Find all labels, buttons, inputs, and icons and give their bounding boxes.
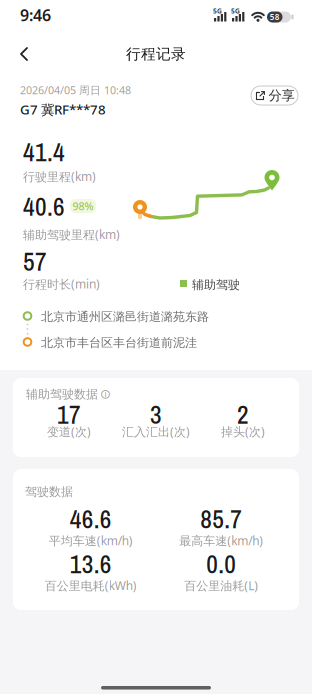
staticText: 58 — [270, 12, 280, 22]
staticText: 41.4 — [23, 135, 65, 169]
staticText: 98% — [72, 199, 93, 213]
staticText: 85.7 — [200, 502, 242, 536]
staticText: 变道(次) — [47, 424, 91, 439]
staticText: 最高车速(km/h) — [179, 533, 263, 548]
staticText: 0.0 — [206, 547, 236, 581]
staticText: 行驶里程(km) — [23, 168, 96, 184]
staticText: 百公里电耗(kWh) — [45, 578, 137, 593]
staticText: 掉头(次) — [221, 424, 265, 439]
staticText: 57 — [23, 244, 47, 279]
staticText: 行程时长(min) — [23, 276, 100, 292]
button[interactable]: Back — [0, 32, 44, 76]
staticText: 辅助驾驶里程(km) — [23, 226, 120, 242]
staticText: 北京市丰台区丰台街道前泥洼 — [41, 335, 197, 350]
staticText: G7 冀RF***78 — [20, 100, 106, 118]
staticText: 13.6 — [70, 547, 112, 581]
staticText: 17 — [57, 397, 81, 432]
staticText: 46.6 — [70, 502, 112, 536]
staticText: 分享 — [268, 87, 294, 104]
staticText: 平均车速(km/h) — [49, 533, 133, 548]
staticText: 驾驶数据 — [25, 484, 73, 499]
staticText: 5G — [231, 6, 240, 15]
staticText: i — [104, 390, 106, 399]
staticText: 行程记录 — [126, 45, 186, 63]
button[interactable]: 分享 — [251, 86, 298, 105]
staticText: 2026/04/05 周日 10:48 — [20, 83, 131, 97]
staticText: 辅助驾驶 — [192, 277, 240, 292]
staticText: 辅助驾驶数据 — [26, 387, 98, 402]
staticText: 百公里油耗(L) — [184, 578, 258, 593]
staticText: 2 — [237, 397, 249, 432]
staticText: 40.6 — [23, 189, 65, 224]
staticText: 5G — [213, 6, 222, 15]
staticText: 北京市通州区潞邑街道潞苑东路 — [41, 309, 209, 324]
staticText: 汇入汇出(次) — [122, 424, 190, 439]
staticText: 9:46 — [20, 4, 51, 26]
button[interactable]: 说明 — [101, 390, 110, 399]
staticText: 3 — [150, 397, 162, 432]
